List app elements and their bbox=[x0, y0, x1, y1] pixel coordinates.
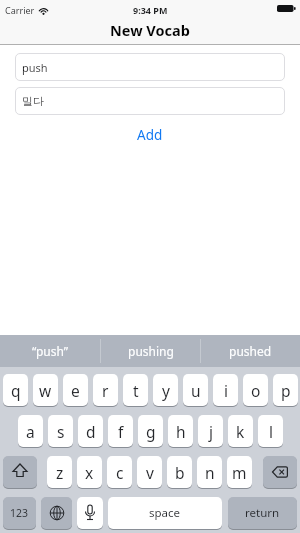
staticText: return bbox=[245, 505, 280, 521]
button[interactable]: l bbox=[258, 415, 283, 448]
button[interactable]: g bbox=[138, 415, 163, 448]
button[interactable]: a bbox=[18, 415, 43, 448]
staticText: v bbox=[146, 462, 154, 483]
button[interactable]: z bbox=[47, 456, 72, 489]
staticText: space bbox=[149, 505, 181, 521]
staticText: pushing bbox=[128, 343, 174, 359]
button[interactable]: f bbox=[108, 415, 133, 448]
button[interactable]: n bbox=[197, 456, 222, 489]
staticText: b bbox=[175, 462, 185, 483]
button[interactable] bbox=[263, 456, 297, 489]
button[interactable]: m bbox=[227, 456, 252, 489]
button[interactable]: r bbox=[93, 374, 118, 407]
staticText: u bbox=[191, 380, 201, 401]
button[interactable] bbox=[41, 497, 72, 530]
button[interactable]: q bbox=[3, 374, 28, 407]
button[interactable]: pushing bbox=[101, 335, 200, 367]
staticText: o bbox=[251, 380, 261, 401]
button[interactable]: j bbox=[198, 415, 223, 448]
button[interactable]: 123 bbox=[3, 497, 36, 530]
staticText: s bbox=[57, 421, 65, 442]
button[interactable]: u bbox=[183, 374, 208, 407]
staticText: c bbox=[116, 462, 124, 483]
button[interactable] bbox=[77, 497, 103, 530]
button[interactable]: o bbox=[243, 374, 268, 407]
staticText: a bbox=[26, 421, 35, 442]
button[interactable]: Add bbox=[129, 124, 171, 146]
staticText: g bbox=[146, 421, 156, 442]
staticText: 123 bbox=[10, 506, 29, 520]
button[interactable]: p bbox=[273, 374, 298, 407]
staticText: n bbox=[205, 462, 215, 483]
staticText: q bbox=[11, 380, 21, 401]
button[interactable]: “push” bbox=[0, 335, 100, 367]
button[interactable]: space bbox=[108, 497, 222, 530]
button[interactable]: pushed bbox=[201, 335, 300, 367]
staticText: “push” bbox=[32, 343, 69, 359]
staticText: Add bbox=[137, 126, 163, 144]
button[interactable]: k bbox=[228, 415, 253, 448]
button[interactable]: push bbox=[15, 53, 285, 81]
button[interactable]: x bbox=[77, 456, 102, 489]
button[interactable]: t bbox=[123, 374, 148, 407]
staticText: Carrier bbox=[5, 4, 35, 16]
staticText: p bbox=[281, 380, 291, 401]
staticText: New Vocab bbox=[110, 20, 190, 40]
button[interactable]: c bbox=[107, 456, 132, 489]
button[interactable]: b bbox=[167, 456, 192, 489]
staticText: i bbox=[224, 380, 228, 401]
staticText: w bbox=[39, 380, 52, 401]
button[interactable]: i bbox=[213, 374, 238, 407]
staticText: 9:34 PM bbox=[133, 4, 168, 16]
staticText: y bbox=[162, 380, 170, 401]
button[interactable]: y bbox=[153, 374, 178, 407]
staticText: t bbox=[133, 380, 139, 401]
button[interactable]: s bbox=[48, 415, 73, 448]
button[interactable]: return bbox=[228, 497, 297, 530]
staticText: pushed bbox=[229, 343, 272, 359]
button[interactable]: w bbox=[33, 374, 58, 407]
staticText: k bbox=[236, 421, 245, 442]
staticText: d bbox=[86, 421, 96, 442]
button[interactable]: d bbox=[78, 415, 103, 448]
staticText: e bbox=[71, 380, 80, 401]
staticText: x bbox=[85, 462, 94, 483]
staticText: l bbox=[269, 421, 273, 442]
staticText: m bbox=[232, 462, 247, 483]
button[interactable]: h bbox=[168, 415, 193, 448]
button[interactable]: v bbox=[137, 456, 162, 489]
button[interactable] bbox=[3, 456, 37, 489]
staticText: push bbox=[22, 60, 48, 75]
button[interactable]: e bbox=[63, 374, 88, 407]
staticText: f bbox=[118, 421, 124, 442]
staticText: j bbox=[209, 421, 213, 442]
staticText: z bbox=[56, 462, 64, 483]
staticText: 밀다 bbox=[22, 94, 44, 108]
staticText: r bbox=[102, 380, 109, 401]
button[interactable]: 밀다 bbox=[15, 87, 285, 115]
staticText: h bbox=[176, 421, 186, 442]
